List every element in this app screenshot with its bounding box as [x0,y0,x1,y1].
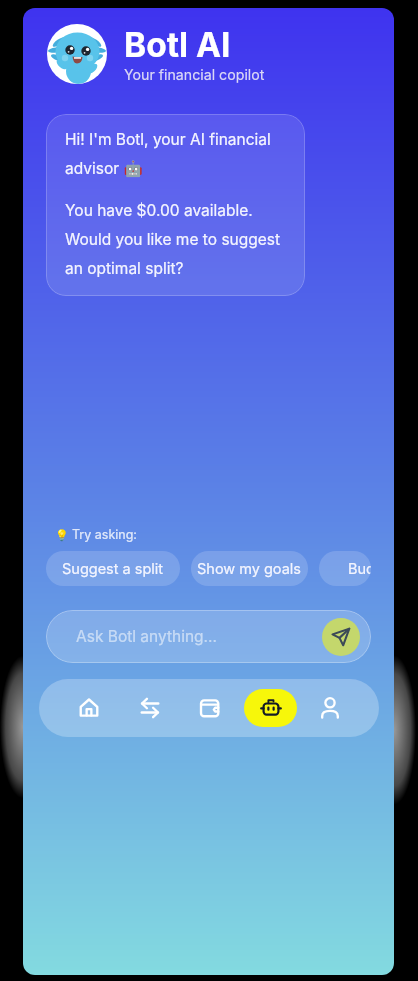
button[interactable] [240,679,300,737]
button[interactable]: Show my goals [191,551,308,586]
button[interactable]: Ask Botl anything... [46,610,371,663]
staticText: Your financial copilot [124,66,265,83]
staticText: Suggest a split [62,560,164,578]
button[interactable] [300,679,360,737]
button[interactable] [119,679,180,737]
button[interactable] [322,618,360,656]
staticText: Ask Botl anything... [76,627,217,646]
button[interactable] [58,679,119,737]
staticText: Budget tips [348,560,371,578]
staticText: Hi! I'm Botl, your AI financial advisor … [65,130,271,178]
staticText: You have $0.00 available. Would you like… [65,201,281,278]
button[interactable] [180,679,240,737]
button[interactable]: Budget tips [319,551,371,586]
button[interactable]: Suggest a split [46,551,180,586]
staticText: 💡 [55,528,72,541]
staticText: Show my goals [197,560,302,578]
staticText: Try asking: [72,527,137,542]
staticText: Botl AI [124,25,231,66]
